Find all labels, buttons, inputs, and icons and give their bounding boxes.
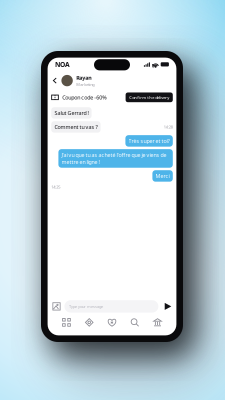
- button[interactable]: Confirm the delivery: [126, 92, 173, 102]
- button[interactable]: Favorites: [101, 315, 123, 329]
- button[interactable]: Wallet: [146, 315, 169, 329]
- staticText: Marketing: [76, 82, 94, 87]
- staticText: Coupon code -60%: [62, 94, 106, 101]
- staticText: Très super et toi?: [129, 137, 170, 144]
- staticText: 14:28: [164, 124, 173, 130]
- staticText: Comment tu vas ?: [54, 123, 97, 130]
- button[interactable]: Attach photo: [51, 301, 62, 312]
- staticText: Merci: [156, 172, 170, 179]
- button[interactable]: Rayan: [48, 71, 176, 90]
- staticText: NOA: [55, 60, 70, 69]
- staticText: 14:25: [51, 184, 60, 189]
- staticText: Rayan: [76, 74, 91, 81]
- staticText: Confirm the delivery: [129, 95, 169, 100]
- staticText: J'ai vu que tu as acheté l'offre que je …: [62, 151, 167, 165]
- button[interactable]: Search: [123, 315, 146, 329]
- button[interactable]: Explore: [78, 315, 101, 329]
- staticText: Salut Gerrard !: [54, 109, 88, 116]
- staticText: Type your message: [69, 304, 103, 309]
- button[interactable]: Apps: [55, 315, 78, 329]
- button[interactable]: Send: [162, 301, 173, 312]
